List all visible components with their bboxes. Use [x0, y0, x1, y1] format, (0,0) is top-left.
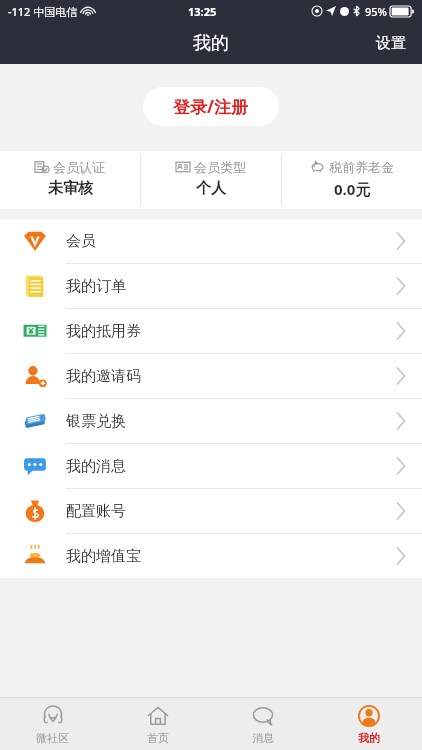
staticText: 我的 — [193, 32, 229, 55]
staticText: 银票兑换 — [66, 412, 126, 431]
button[interactable]: 我的消息 — [0, 444, 422, 488]
button[interactable]: 银票兑换 — [0, 399, 422, 443]
staticText: 我的增值宝 — [66, 547, 141, 566]
staticText: 配置账号 — [66, 502, 126, 521]
staticText: 个人 — [196, 179, 226, 198]
staticText: 我的 — [358, 731, 380, 745]
button[interactable]: 我的增值宝 — [0, 534, 422, 578]
staticText: 会员类型 — [194, 159, 246, 175]
staticText: 我的订单 — [66, 277, 126, 296]
button[interactable]: 微社区 — [0, 698, 105, 750]
staticText: 会员 — [66, 232, 96, 251]
staticText: -112 中国电信 — [8, 4, 78, 19]
staticText: 未审核 — [48, 179, 93, 198]
staticText: 我的邀请码 — [66, 367, 141, 386]
button[interactable]: 首页 — [105, 698, 210, 750]
button[interactable]: 配置账号 — [0, 489, 422, 533]
button[interactable]: 登录/注册 — [143, 87, 279, 126]
button[interactable]: 我的邀请码 — [0, 354, 422, 398]
staticText: 95% — [365, 4, 387, 19]
button[interactable]: 会员类型 — [141, 151, 281, 209]
button[interactable]: 我的订单 — [0, 264, 422, 308]
staticText: 登录/注册 — [173, 95, 249, 118]
staticText: 微社区 — [36, 731, 69, 745]
button[interactable]: 税前养老金 — [282, 151, 422, 209]
staticText: 会员认证 — [53, 159, 105, 175]
button[interactable]: 我的抵用券 — [0, 309, 422, 353]
staticText: 设置 — [376, 34, 406, 53]
staticText: 税前养老金 — [329, 159, 394, 175]
button[interactable]: 会员认证 — [0, 151, 140, 209]
staticText: 消息 — [252, 731, 274, 745]
staticText: 首页 — [147, 731, 169, 745]
button[interactable]: 会员 — [0, 219, 422, 263]
button[interactable]: 消息 — [210, 698, 316, 750]
staticText: 0.0元 — [334, 179, 371, 199]
button[interactable]: 我的 — [316, 698, 422, 750]
staticText: 我的消息 — [66, 457, 126, 476]
staticText: 我的抵用券 — [66, 322, 141, 341]
button[interactable]: 设置 — [360, 26, 422, 61]
staticText: 13:25 — [188, 4, 217, 19]
